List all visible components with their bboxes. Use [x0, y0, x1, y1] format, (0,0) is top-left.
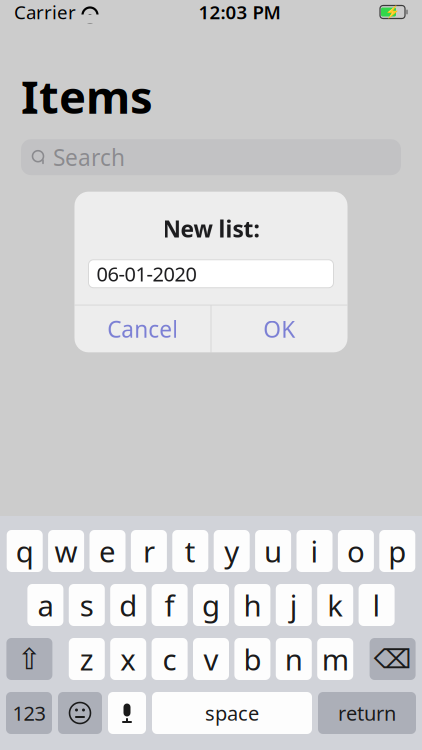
staticText: 123	[12, 700, 45, 726]
button[interactable]: j	[276, 584, 312, 626]
button[interactable]: Delete	[370, 638, 416, 680]
button[interactable]: d	[110, 584, 146, 626]
staticText: o	[347, 531, 365, 570]
button[interactable]: c	[152, 638, 188, 680]
staticText: g	[202, 585, 220, 624]
staticText: c	[163, 639, 177, 678]
button[interactable]: r	[131, 530, 167, 572]
button[interactable]: v	[193, 638, 229, 680]
staticText: u	[264, 531, 282, 570]
staticText: l	[373, 585, 381, 624]
button[interactable]: OK	[211, 305, 347, 352]
button[interactable]: a	[27, 584, 63, 626]
staticText: ⚡	[385, 5, 400, 19]
staticText: i	[310, 531, 318, 570]
button[interactable]: b	[234, 638, 270, 680]
button[interactable]: s	[69, 584, 105, 626]
staticText: m	[322, 639, 349, 678]
staticText: h	[243, 585, 261, 624]
staticText: ⌫	[374, 644, 412, 674]
staticText: v	[203, 639, 218, 678]
staticText: 12:03 PM	[198, 0, 280, 24]
staticText: return	[338, 700, 396, 726]
button[interactable]: Dictation	[108, 692, 146, 734]
button[interactable]: g	[193, 584, 229, 626]
button[interactable]: t	[172, 530, 208, 572]
staticText: x	[120, 639, 136, 678]
button[interactable]: m	[317, 638, 353, 680]
button[interactable]: o	[338, 530, 374, 572]
staticText: b	[243, 639, 261, 678]
button[interactable]: h	[234, 584, 270, 626]
button[interactable]: z	[69, 638, 105, 680]
staticText: q	[16, 531, 34, 570]
staticText: Search	[53, 142, 125, 172]
staticText: w	[55, 531, 78, 570]
staticText: p	[388, 531, 406, 570]
staticText: e	[99, 531, 116, 570]
button[interactable]: f	[152, 584, 188, 626]
staticText: z	[80, 639, 94, 678]
button[interactable]: x	[110, 638, 146, 680]
staticText: n	[285, 639, 303, 678]
staticText: s	[80, 585, 94, 624]
button[interactable]: Cancel	[75, 305, 211, 352]
button[interactable]: n	[276, 638, 312, 680]
button[interactable]: y	[214, 530, 250, 572]
button[interactable]: i	[296, 530, 332, 572]
staticText: k	[327, 585, 343, 624]
staticText: d	[119, 585, 137, 624]
staticText: OK	[263, 314, 295, 344]
button[interactable]: Emoji	[58, 692, 102, 734]
staticText: Carrier	[14, 0, 76, 24]
staticText: y	[224, 531, 239, 570]
button[interactable]: Shift	[6, 638, 52, 680]
button[interactable]: u	[255, 530, 291, 572]
staticText: t	[185, 531, 196, 570]
staticText: New list:	[162, 214, 259, 244]
button[interactable]: return	[318, 692, 416, 734]
button[interactable]: p	[379, 530, 415, 572]
staticText: ⇧	[17, 642, 42, 676]
staticText: r	[143, 531, 155, 570]
staticText: a	[37, 585, 53, 624]
button[interactable]: l	[359, 584, 395, 626]
button[interactable]: space	[152, 692, 312, 734]
button[interactable]: Search	[21, 139, 401, 175]
button[interactable]: k	[317, 584, 353, 626]
staticText: j	[290, 585, 298, 624]
staticText: space	[205, 700, 259, 726]
staticText: Items	[21, 66, 153, 126]
button[interactable]: 123	[6, 692, 52, 734]
staticText: Cancel	[107, 314, 178, 344]
staticText: 06-01-2020	[96, 260, 196, 287]
button[interactable]: q	[7, 530, 43, 572]
button[interactable]: e	[89, 530, 125, 572]
staticText: f	[165, 585, 175, 624]
button[interactable]: w	[48, 530, 84, 572]
